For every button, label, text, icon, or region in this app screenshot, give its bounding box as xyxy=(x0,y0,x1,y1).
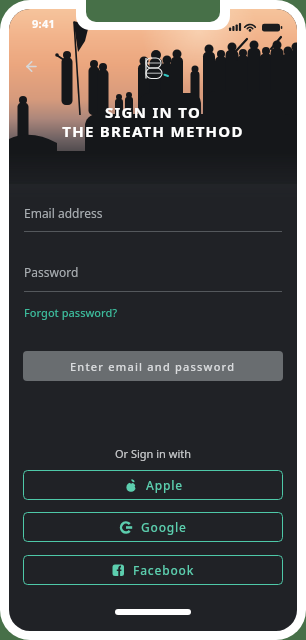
button[interactable]: Apple xyxy=(23,470,283,500)
button[interactable]: Email address xyxy=(24,205,282,235)
button[interactable]: Google xyxy=(23,512,283,542)
staticText: Password xyxy=(24,264,79,280)
staticText: Email address xyxy=(24,205,103,221)
staticText: SIGN IN TO xyxy=(9,102,297,122)
button[interactable] xyxy=(17,57,41,77)
staticText: Facebook xyxy=(133,562,195,578)
staticText: THE BREATH METHOD xyxy=(9,121,297,141)
button[interactable]: Forgot password? xyxy=(24,305,118,320)
staticText: Apple xyxy=(146,477,183,493)
button[interactable]: Facebook xyxy=(23,555,283,585)
staticText: Or Sign in with xyxy=(9,446,297,461)
staticText: Forgot password? xyxy=(24,305,118,320)
button[interactable]: Enter email and password xyxy=(23,351,283,381)
staticText: 9:41 xyxy=(32,16,56,31)
button[interactable]: Password xyxy=(24,264,282,294)
staticText: Google xyxy=(141,519,187,535)
staticText: Enter email and password xyxy=(70,359,236,374)
